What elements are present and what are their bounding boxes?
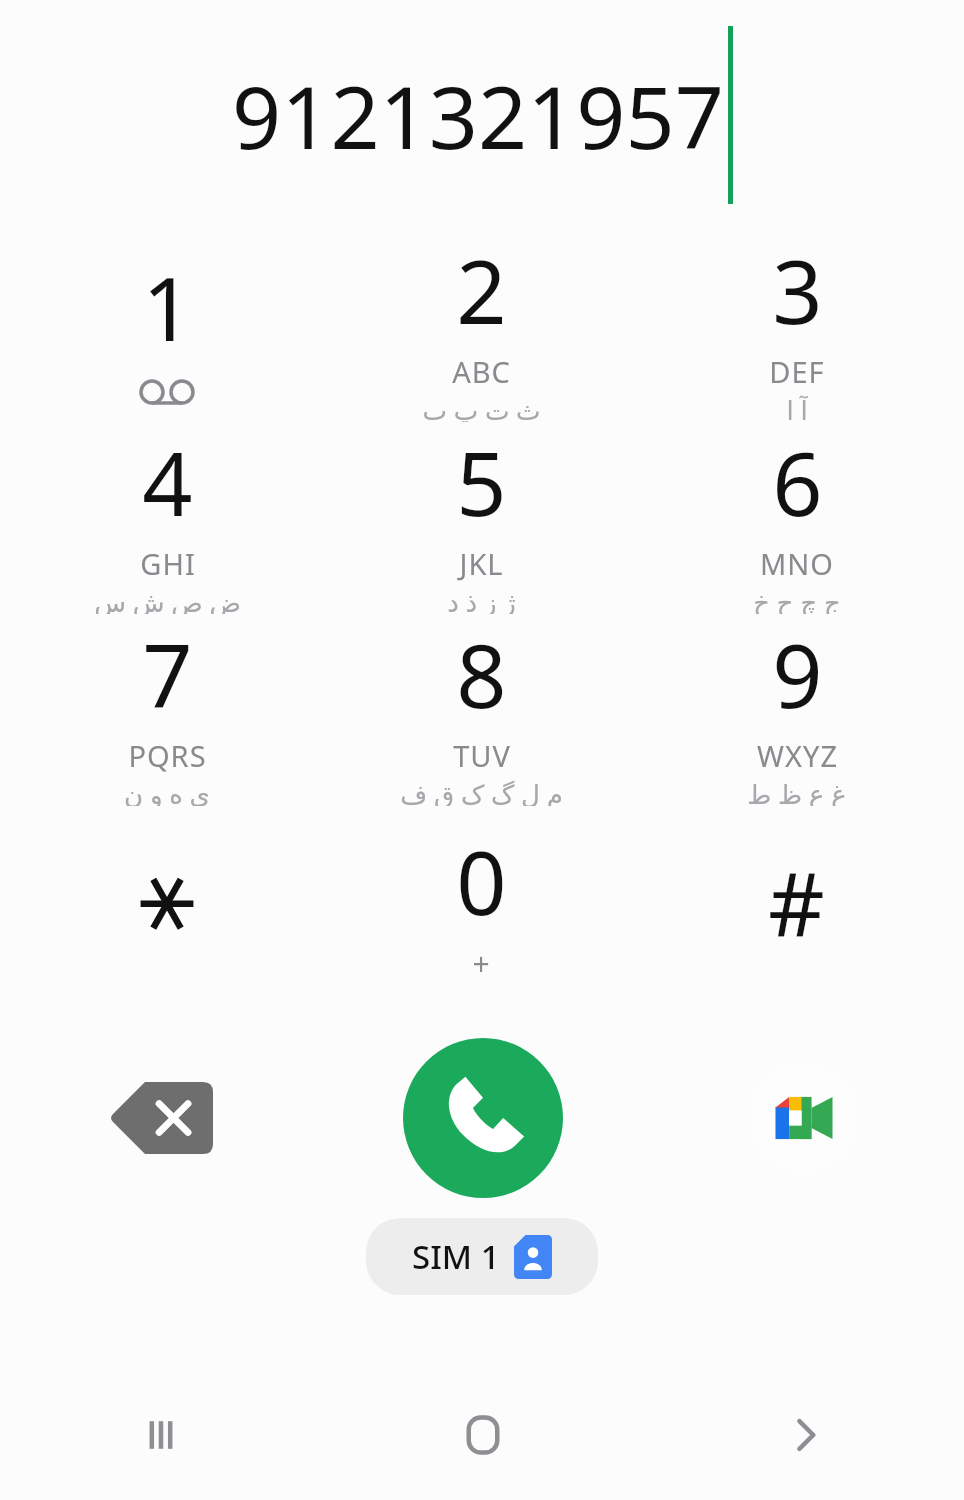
staticText: JKL [459,544,504,583]
staticText: 3 [772,230,823,350]
staticText: ABC [452,352,511,391]
staticText: ض ص ش س [94,584,241,614]
staticText: غ ع ظ ط [747,776,847,806]
staticText: م ل گ ک ق ف [400,776,563,806]
button[interactable]: 8 [324,614,639,806]
button[interactable]: 9 [639,614,954,806]
staticText: MNO [760,544,834,583]
staticText: WXYZ [757,736,838,775]
staticText: 8 [456,614,507,734]
button[interactable]: 4 [10,422,324,614]
button[interactable]: SIM 1 [366,1218,598,1295]
button[interactable]: 0 [324,806,639,998]
staticText: 4 [142,422,193,542]
staticText: + [472,943,491,984]
staticText: ث ت پ ب [422,392,541,422]
staticText: DEF [769,352,825,391]
button[interactable]: 2 [324,230,639,422]
button[interactable]: Delete [0,1018,322,1218]
staticText: ی ه و ن [124,776,210,806]
staticText: # [768,842,825,962]
staticText: 9121321957 [232,57,724,174]
button[interactable]: Call [403,1038,563,1198]
staticText: GHI [140,544,196,583]
staticText: ج چ ح خ [753,584,841,614]
button[interactable]: Recents [0,1370,322,1500]
staticText: SIM 1 [412,1234,500,1279]
button[interactable]: Video call [748,1062,860,1174]
staticText: 5 [456,422,507,542]
button[interactable]: 3 [639,230,954,422]
button[interactable]: 1 [10,230,324,422]
staticText: آ ا [786,392,808,422]
staticText: 1 [142,247,193,367]
staticText: 6 [772,422,823,542]
staticText: ژ ز ذ د [447,584,516,614]
staticText: 2 [456,230,507,350]
button[interactable]: # [639,806,954,998]
button[interactable]: 7 [10,614,324,806]
button[interactable]: Back [643,1370,964,1500]
button[interactable]: 6 [639,422,954,614]
staticText: TUV [453,736,511,775]
staticText: 0 [456,821,507,941]
staticText: 9 [772,614,823,734]
button[interactable]: Home [322,1370,643,1500]
staticText: PQRS [128,736,207,775]
button[interactable]: 5 [324,422,639,614]
staticText: 7 [142,614,193,734]
button[interactable] [10,806,324,998]
